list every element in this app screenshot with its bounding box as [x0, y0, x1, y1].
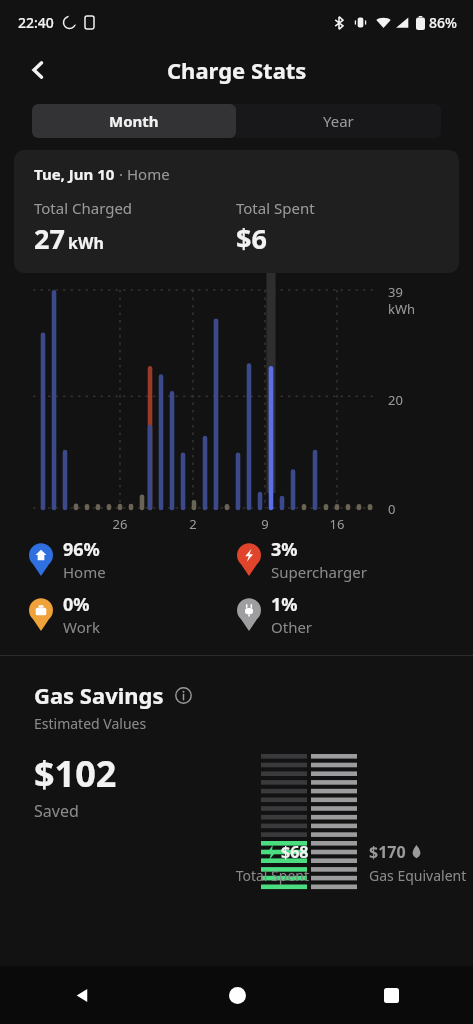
staticText: Saved [34, 800, 79, 822]
staticText: 0% [63, 592, 90, 617]
staticText: Total Charged [34, 198, 133, 218]
staticText: 9 [250, 515, 280, 533]
button[interactable]: Recent apps [369, 973, 413, 1017]
button[interactable]: Back [20, 52, 56, 88]
staticText: 1% [271, 592, 298, 617]
staticText: kWh [388, 300, 416, 318]
button[interactable]: 96% [28, 537, 236, 582]
button[interactable]: Tue, Jun 10 [34, 164, 439, 257]
button[interactable]: Info [172, 684, 194, 706]
staticText: $68 [281, 841, 309, 863]
staticText: Year [323, 111, 354, 131]
staticText: 16 [322, 515, 352, 533]
staticText: 39 [388, 283, 403, 301]
staticText: $170 [369, 841, 406, 863]
staticText: Gas Savings [34, 680, 164, 710]
staticText: 3% [271, 537, 298, 562]
button[interactable]: 1% [236, 592, 445, 637]
staticText: Other [271, 617, 313, 637]
staticText: Work [63, 617, 100, 637]
staticText: Home [63, 562, 106, 582]
staticText: 26 [105, 515, 135, 533]
staticText: 96% [63, 537, 100, 562]
button[interactable]: Home [215, 973, 259, 1017]
staticText: 2 [178, 515, 208, 533]
staticText: Total Spent [229, 866, 309, 885]
staticText: 0 [388, 500, 396, 518]
staticText: Gas Equivalent [369, 866, 467, 885]
staticText: 86% [429, 13, 457, 32]
staticText: 20 [388, 391, 403, 409]
staticText: 27 [34, 220, 65, 257]
staticText: $102 [34, 749, 117, 798]
button[interactable]: 0% [28, 592, 236, 637]
button[interactable]: Back [60, 973, 104, 1017]
staticText: Charge Stats [167, 55, 307, 85]
button[interactable]: Month [32, 104, 236, 138]
button[interactable]: 3% [236, 537, 445, 582]
staticText: Total Spent [236, 198, 315, 218]
staticText: Estimated Values [34, 714, 147, 733]
staticText: kWh [68, 232, 104, 254]
staticText: Home [127, 164, 170, 184]
staticText: Supercharger [271, 562, 367, 582]
staticText: Tue, Jun 10 [34, 164, 115, 184]
staticText: · [115, 164, 127, 184]
staticText: 22:40 [18, 13, 54, 32]
staticText: $6 [236, 220, 267, 257]
button[interactable]: Year [236, 104, 441, 138]
staticText: Month [109, 111, 159, 131]
